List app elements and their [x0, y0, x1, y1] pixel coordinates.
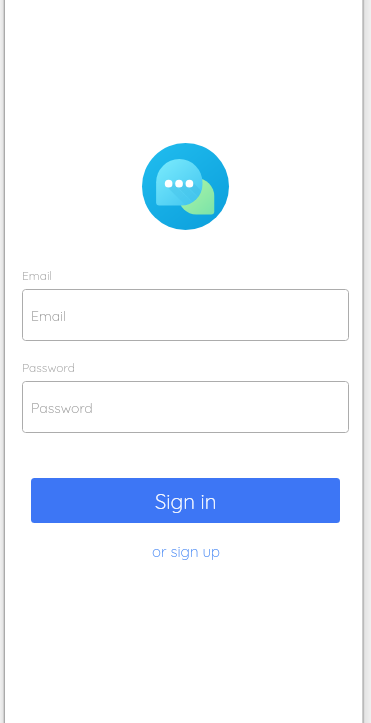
staticText: Email: [31, 307, 66, 325]
button[interactable]: Password: [22, 381, 349, 433]
button[interactable]: Email: [22, 289, 349, 341]
staticText: or sign up: [152, 542, 220, 561]
staticText: Password: [22, 360, 75, 375]
button[interactable]: or sign up: [146, 540, 226, 563]
button[interactable]: Sign in: [31, 478, 340, 523]
staticText: Email: [22, 268, 52, 283]
staticText: Sign in: [155, 488, 217, 514]
staticText: Password: [31, 399, 93, 417]
